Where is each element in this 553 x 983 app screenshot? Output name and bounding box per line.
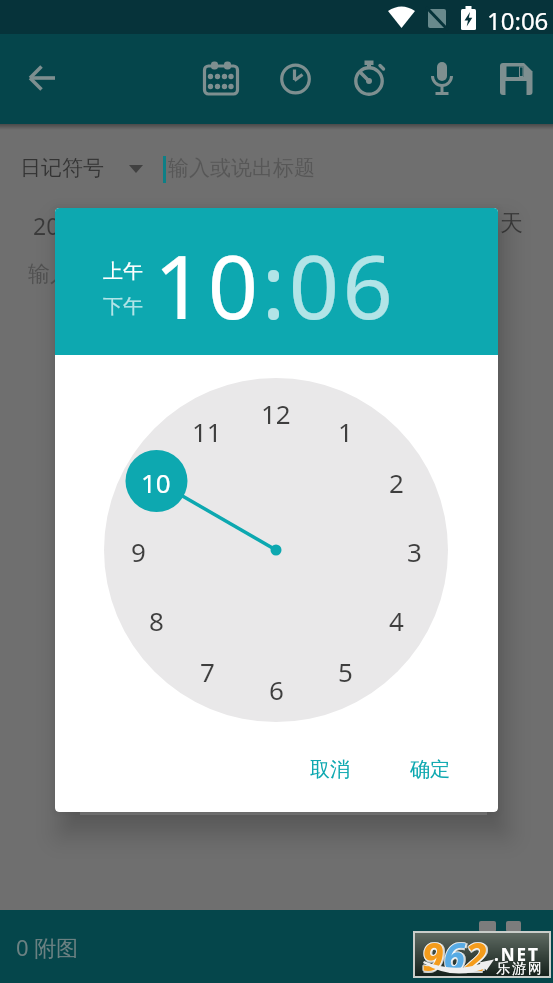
- staticText: 10:06: [487, 4, 549, 31]
- staticText: 乐游网: [495, 960, 543, 978]
- button[interactable]: [21, 56, 65, 100]
- staticText: 10: [141, 465, 171, 497]
- staticText: 9: [131, 534, 146, 566]
- staticText: 下午: [103, 294, 143, 319]
- staticText: 6: [269, 672, 284, 704]
- staticText: 取消: [310, 757, 350, 782]
- staticText: 8: [149, 603, 164, 635]
- button[interactable]: [347, 57, 391, 101]
- button[interactable]: 取消: [298, 751, 362, 787]
- button[interactable]: 上午: [99, 258, 147, 284]
- button[interactable]: [199, 57, 243, 101]
- staticText: 962: [421, 929, 486, 972]
- staticText: 962: [422, 931, 487, 974]
- staticText: 12: [261, 396, 291, 428]
- staticText: 962: [424, 929, 489, 972]
- button[interactable]: [420, 57, 464, 101]
- staticText: 上午: [103, 259, 143, 284]
- staticText: 确定: [410, 757, 450, 782]
- staticText: 日记符号: [20, 155, 104, 181]
- staticText: 4: [389, 603, 404, 635]
- button[interactable]: 0 附图: [16, 932, 79, 962]
- staticText: 输入或说出标题: [168, 155, 315, 181]
- button[interactable]: [494, 57, 538, 101]
- staticText: 输入: [28, 260, 72, 288]
- staticText: 2: [389, 465, 404, 497]
- staticText: 962: [422, 928, 487, 971]
- staticText: 10:06: [154, 225, 397, 329]
- staticText: 20: [33, 210, 60, 241]
- staticText: .NET: [494, 943, 540, 966]
- staticText: 天: [500, 209, 523, 238]
- button[interactable]: 下午: [99, 293, 147, 319]
- button[interactable]: [273, 57, 317, 101]
- staticText: 3: [407, 534, 422, 566]
- staticText: 7: [200, 654, 215, 686]
- button[interactable]: 日记符号: [20, 153, 144, 183]
- staticText: 0 附图: [16, 932, 79, 962]
- button[interactable]: 确定: [398, 751, 462, 787]
- staticText: 962: [422, 929, 487, 972]
- staticText: 11: [192, 414, 222, 446]
- staticText: 1: [338, 414, 353, 446]
- staticText: 5: [338, 654, 353, 686]
